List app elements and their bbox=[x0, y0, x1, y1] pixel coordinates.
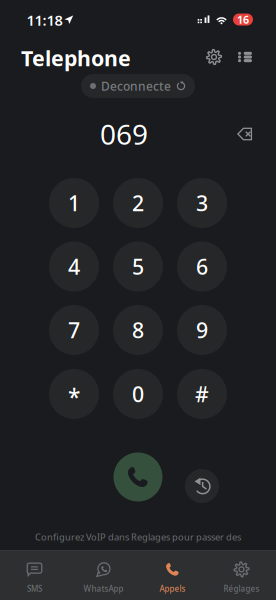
staticText: SMS bbox=[27, 583, 42, 594]
staticText: 7 bbox=[68, 316, 80, 344]
button[interactable]: Deconnecte bbox=[81, 74, 195, 98]
button[interactable]: * bbox=[49, 369, 99, 419]
staticText: 4 bbox=[68, 252, 80, 281]
staticText: * bbox=[68, 382, 80, 412]
button[interactable]: Réglages bbox=[207, 550, 276, 600]
staticText: Réglages bbox=[223, 583, 259, 594]
button[interactable]: Appels bbox=[138, 550, 207, 600]
staticText: 1 bbox=[68, 189, 80, 217]
button[interactable]: Settings bbox=[201, 44, 227, 70]
staticText: 5 bbox=[132, 252, 144, 281]
staticText: # bbox=[195, 380, 209, 408]
button[interactable]: 9 bbox=[177, 305, 227, 355]
button[interactable]: 6 bbox=[177, 241, 227, 291]
staticText: 069 bbox=[100, 115, 148, 153]
staticText: 9 bbox=[196, 316, 208, 344]
button[interactable]: 5 bbox=[113, 241, 163, 291]
staticText: 11:18 bbox=[26, 10, 62, 30]
button[interactable]: Recents bbox=[185, 469, 219, 503]
staticText: Configurez VoIP dans Reglages pour passe… bbox=[35, 531, 241, 543]
staticText: 8 bbox=[132, 316, 144, 344]
button[interactable]: # bbox=[177, 369, 227, 419]
button[interactable]: 8 bbox=[113, 305, 163, 355]
button[interactable]: 1 bbox=[49, 178, 99, 228]
button[interactable]: 7 bbox=[49, 305, 99, 355]
button[interactable]: 2 bbox=[113, 178, 163, 228]
staticText: 0 bbox=[132, 380, 144, 408]
button[interactable]: 3 bbox=[177, 178, 227, 228]
button[interactable]: WhatsApp bbox=[69, 550, 138, 600]
button[interactable]: Call history bbox=[232, 44, 258, 70]
button[interactable]: Delete bbox=[230, 121, 260, 147]
staticText: 6 bbox=[196, 252, 208, 281]
staticText: Deconnecte bbox=[101, 78, 171, 94]
staticText: 3 bbox=[196, 189, 208, 217]
staticText: Appels bbox=[159, 583, 185, 594]
staticText: 2 bbox=[132, 189, 144, 217]
button[interactable]: SMS bbox=[0, 550, 69, 600]
staticText: Telephone bbox=[21, 44, 131, 72]
button[interactable]: Call bbox=[113, 452, 162, 501]
staticText: WhatsApp bbox=[83, 583, 123, 594]
button[interactable]: 0 bbox=[113, 369, 163, 419]
button[interactable]: 4 bbox=[49, 241, 99, 291]
staticText: 16 bbox=[237, 12, 249, 27]
